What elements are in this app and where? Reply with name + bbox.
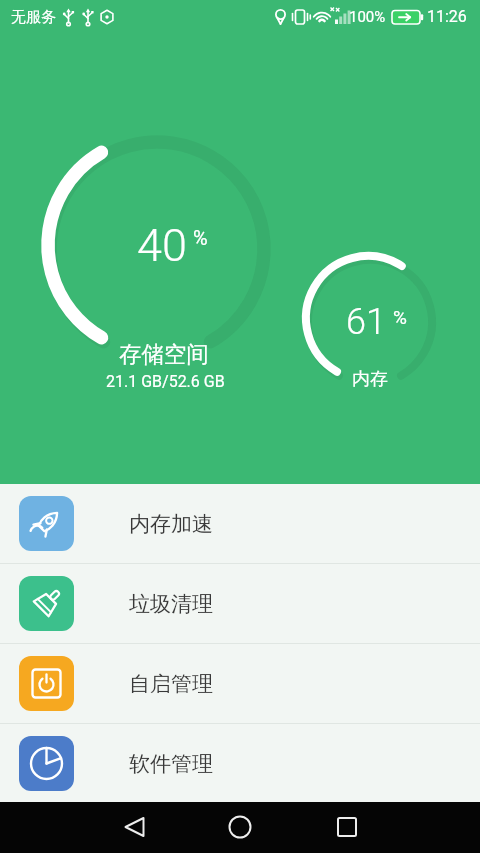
button[interactable]: 自启管理	[0, 644, 480, 723]
button[interactable]: 垃圾清理	[0, 564, 480, 643]
staticText: 40	[137, 219, 187, 272]
staticText: 无服务	[11, 8, 56, 27]
staticText: %	[193, 226, 208, 249]
staticText: 61	[346, 301, 386, 343]
staticText: 11:26	[427, 7, 467, 26]
staticText: 内存加速	[129, 511, 213, 537]
button[interactable]	[315, 802, 379, 853]
staticText: %	[393, 306, 407, 328]
staticText: 自启管理	[129, 671, 213, 697]
staticText: 软件管理	[129, 751, 213, 777]
staticText: 100%	[349, 8, 386, 26]
button[interactable]	[102, 802, 166, 853]
button[interactable]: 内存加速	[0, 484, 480, 563]
staticText: 21.1 GB/52.6 GB	[106, 372, 225, 391]
staticText: 内存	[352, 368, 388, 391]
staticText: 垃圾清理	[129, 591, 213, 617]
button[interactable]	[208, 802, 272, 853]
button[interactable]: 软件管理	[0, 724, 480, 803]
staticText: 存储空间	[119, 340, 209, 368]
